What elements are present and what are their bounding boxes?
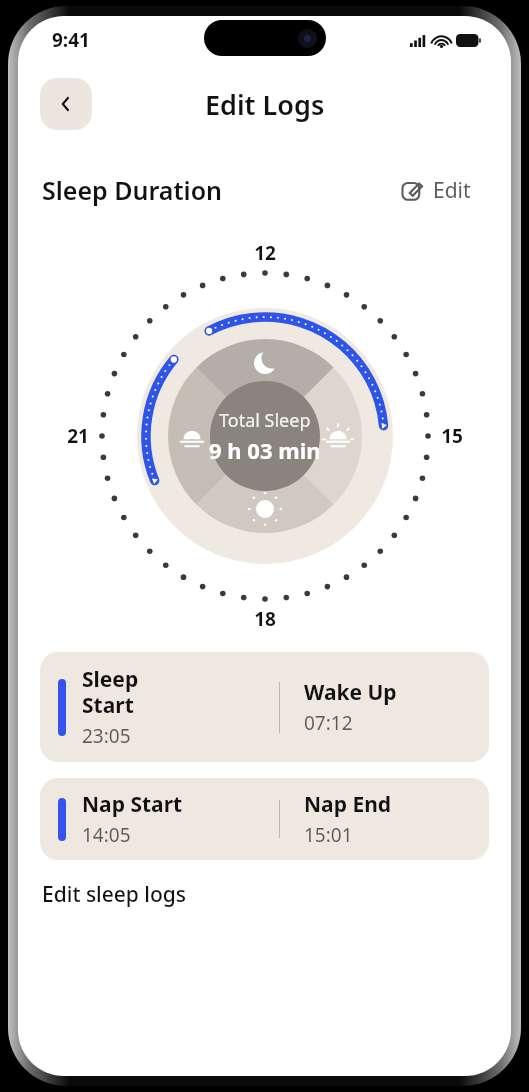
- staticText: 12: [254, 240, 276, 266]
- staticText: Nap End: [304, 790, 392, 819]
- staticText: Wake Up: [304, 678, 397, 707]
- staticText: Edit sleep logs: [42, 880, 187, 909]
- button[interactable]: Sleep Start: [40, 652, 489, 762]
- staticText: 23:05: [82, 723, 131, 749]
- staticText: Edit: [433, 176, 471, 204]
- button[interactable]: Nap Start: [40, 778, 489, 860]
- staticText: 9:41: [52, 27, 90, 53]
- staticText: 9 h 03 min: [209, 435, 321, 465]
- button[interactable]: Edit: [383, 162, 489, 218]
- staticText: 14:05: [82, 822, 131, 848]
- staticText: Nap Start: [82, 790, 183, 819]
- staticText: 18: [254, 606, 276, 632]
- staticText: 15:01: [304, 822, 353, 848]
- staticText: 21: [67, 423, 89, 449]
- staticText: 15: [441, 423, 463, 449]
- staticText: 07:12: [304, 710, 353, 736]
- staticText: Sleep Start: [82, 665, 139, 720]
- button[interactable]: Back: [40, 78, 92, 130]
- staticText: Edit Logs: [205, 86, 325, 123]
- staticText: Sleep Duration: [42, 173, 223, 207]
- staticText: Total Sleep: [219, 408, 311, 433]
